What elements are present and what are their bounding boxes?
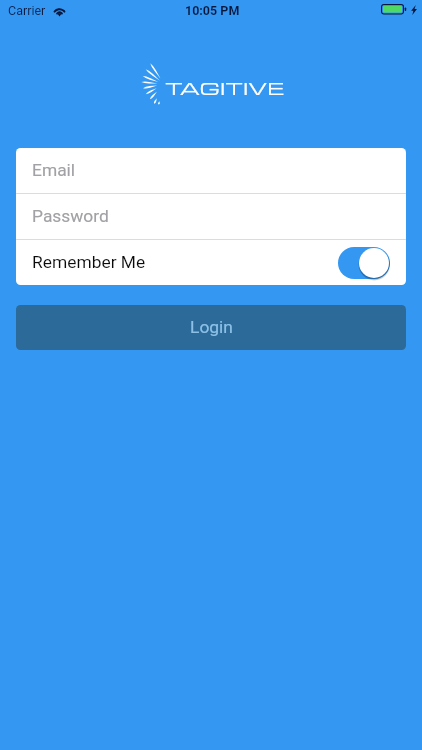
staticText: Password (32, 206, 109, 226)
staticText: Remember Me (32, 252, 146, 272)
button[interactable]: Password (16, 194, 406, 239)
staticText: 10:05 PM (185, 3, 240, 18)
button[interactable]: Email (16, 148, 406, 193)
button[interactable]: Remember Me (16, 240, 406, 285)
staticText: Carrier (8, 3, 46, 18)
staticText: TAGITIVE (165, 76, 284, 99)
button[interactable]: Login (16, 305, 406, 350)
button[interactable]: Remember Me toggle (338, 247, 390, 279)
staticText: Email (32, 160, 76, 180)
staticText: Login (190, 317, 233, 337)
